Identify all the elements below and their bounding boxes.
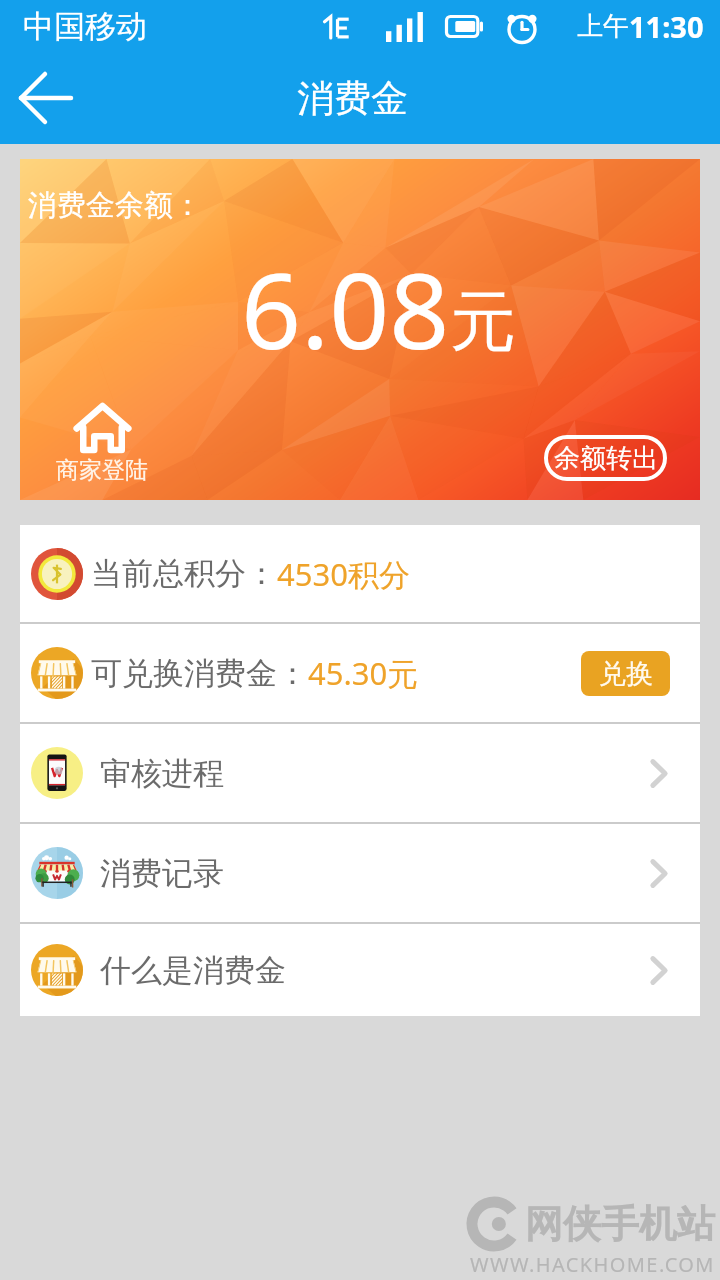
button[interactable]: 可兑换消费金： xyxy=(20,624,700,722)
staticText: 什么是消费金 xyxy=(100,951,286,990)
staticText: 商家登陆 xyxy=(56,456,148,485)
staticText: 可兑换消费金： xyxy=(91,654,308,693)
button[interactable]: 余额转出 xyxy=(544,435,667,481)
staticText: 消费金 xyxy=(297,75,408,122)
button[interactable]: 消费记录 xyxy=(20,824,700,922)
staticText: 审核进程 xyxy=(100,754,224,793)
button[interactable]: 当前总积分： xyxy=(20,525,700,622)
button[interactable]: 审核进程 xyxy=(20,724,700,822)
staticText: 消费金余额： xyxy=(28,187,202,224)
staticText: WWW.HACKHOME.COM xyxy=(470,1251,715,1278)
staticText: 中国移动 xyxy=(23,7,147,46)
staticText: 上午 xyxy=(577,10,629,43)
staticText: 余额转出 xyxy=(554,442,658,475)
button[interactable]: 商家登陆 xyxy=(56,403,148,485)
staticText: 消费记录 xyxy=(100,854,224,893)
staticText: 兑换 xyxy=(599,657,653,691)
staticText: 当前总积分： xyxy=(91,554,277,593)
button[interactable]: 什么是消费金 xyxy=(20,924,700,1016)
staticText: 6.08 xyxy=(241,237,450,380)
staticText: 网侠手机站 xyxy=(525,1200,715,1248)
button[interactable]: Back xyxy=(4,56,88,140)
staticText: 4530积分 xyxy=(277,553,410,595)
staticText: 45.30元 xyxy=(308,652,419,694)
staticText: 元 xyxy=(450,280,516,363)
staticText: 11:30 xyxy=(629,7,704,46)
button[interactable]: 兑换 xyxy=(581,651,670,696)
